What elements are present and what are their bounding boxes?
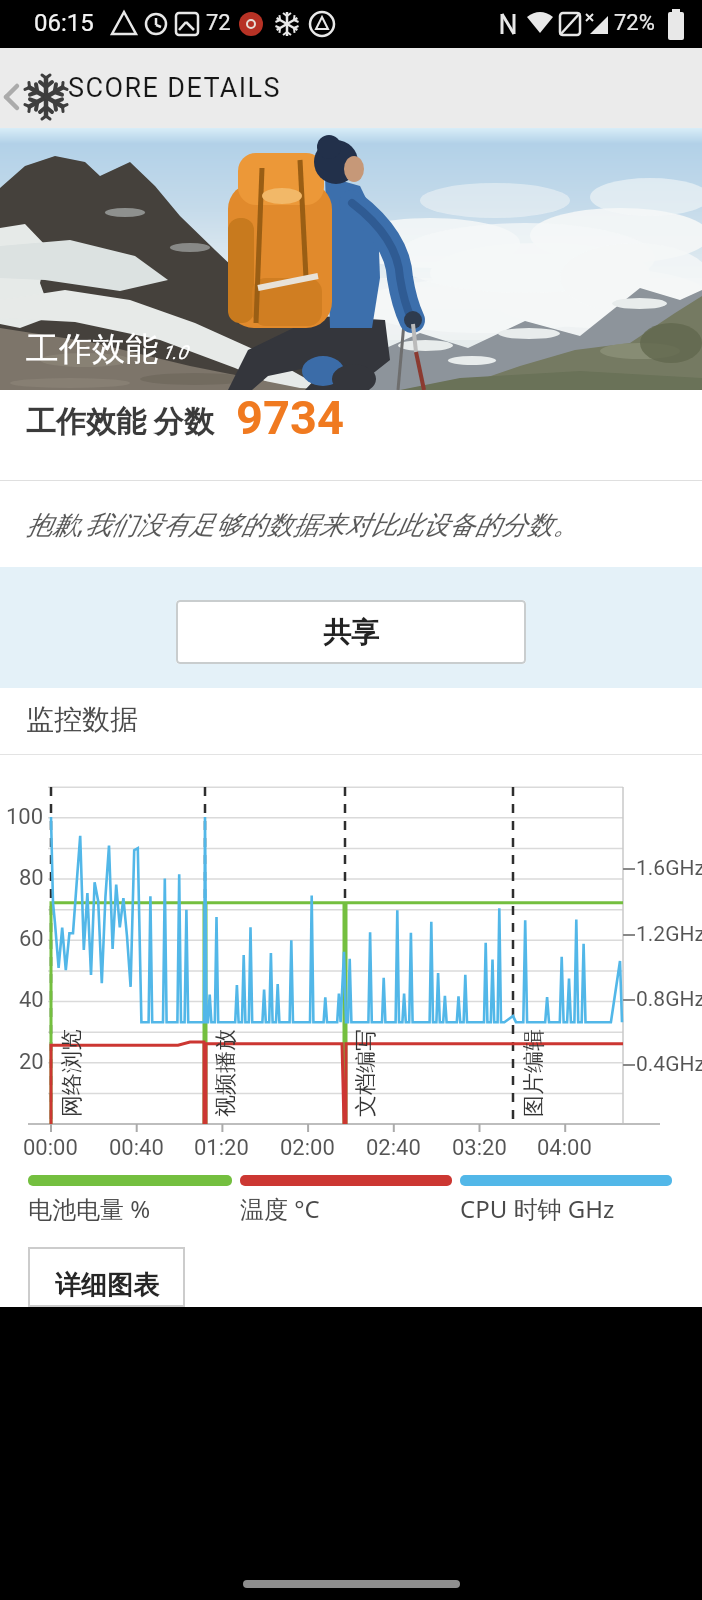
staticText: 抱歉,我们没有足够的数据来对比此设备的分数。 [26, 506, 579, 542]
staticText: 视频播放 [212, 1029, 240, 1117]
staticText: 72% [614, 10, 655, 36]
staticText: 0.4GHz [636, 1052, 702, 1077]
staticText: 1.0 [162, 341, 188, 363]
staticText: 100 [6, 804, 44, 830]
staticText: 监控数据 [26, 702, 138, 737]
staticText: 文档编写 [352, 1029, 380, 1117]
staticText: 20 [19, 1049, 44, 1075]
button[interactable]: 共享 [176, 600, 526, 664]
staticText: 72 [206, 10, 231, 36]
staticText: 电池电量 % [28, 1192, 151, 1225]
staticText: 02:00 [280, 1135, 335, 1161]
staticText: 共享 [323, 615, 379, 650]
staticText: 9734 [236, 390, 344, 445]
staticText: 详细图表 [55, 1269, 159, 1302]
staticText: 温度 °C [240, 1192, 320, 1225]
staticText: 0.8GHz [636, 987, 702, 1012]
staticText: 1.2GHz [636, 922, 702, 947]
staticText: 1.6GHz [636, 856, 702, 881]
button[interactable]: SCORE DETAILS [0, 48, 277, 128]
staticText: 00:00 [23, 1135, 78, 1161]
staticText: 40 [19, 987, 44, 1013]
staticText: 网络浏览 [58, 1029, 86, 1117]
staticText: 02:40 [366, 1135, 421, 1161]
staticText: 图片编辑 [520, 1029, 548, 1117]
staticText: 工作效能 分数 [26, 400, 214, 441]
staticText: 00:40 [109, 1135, 164, 1161]
staticText: 80 [19, 865, 44, 891]
staticText: 04:00 [537, 1135, 592, 1161]
staticText: 工作效能 [26, 328, 158, 370]
staticText: 01:20 [194, 1135, 249, 1161]
staticText: 06:15 [34, 9, 94, 37]
staticText: 60 [19, 926, 44, 952]
staticText: CPU 时钟 GHz [460, 1192, 615, 1225]
staticText: 03:20 [452, 1135, 507, 1161]
button[interactable]: 详细图表 [28, 1247, 185, 1307]
staticText: SCORE DETAILS [68, 72, 281, 104]
